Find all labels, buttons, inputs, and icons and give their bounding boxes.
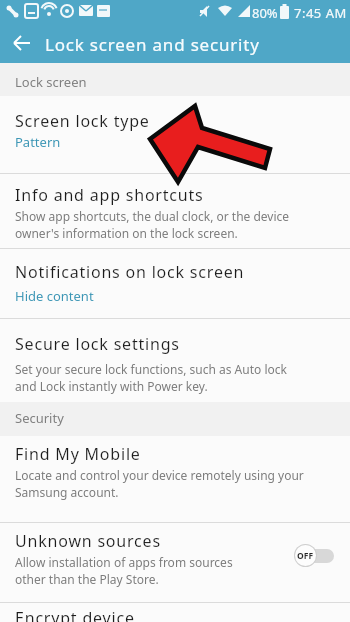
staticText: Hide content [15, 287, 94, 305]
staticText: owner's information on the lock screen. [15, 225, 238, 241]
staticText: Locate and control your device remotely … [15, 467, 304, 483]
button[interactable] [6, 28, 38, 58]
staticText: Notifications on lock screen [15, 261, 245, 283]
staticText: Unknown sources [15, 530, 161, 552]
staticText: Lock screen and security [45, 33, 260, 56]
staticText: Encrypt device [15, 607, 135, 622]
staticText: Lock screen [15, 73, 87, 91]
staticText: Set your secure lock functions, such as … [15, 361, 287, 377]
staticText: Show app shortcuts, the dual clock, or t… [15, 208, 290, 224]
staticText: 7:45 AM [294, 4, 347, 22]
button[interactable]: OFF [294, 544, 334, 567]
staticText: Screen lock type [15, 110, 150, 132]
staticText: OFF [297, 550, 314, 562]
staticText: 80% [252, 4, 278, 22]
staticText: and Lock instantly with Power key. [15, 378, 208, 394]
staticText: Pattern [15, 133, 61, 151]
button[interactable]: Unknown sources [0, 523, 350, 602]
staticText: Samsung account. [15, 484, 119, 500]
staticText: Secure lock settings [15, 333, 180, 355]
button[interactable]: Info and app shortcuts [0, 174, 350, 248]
button[interactable]: Screen lock type [0, 96, 350, 173]
button[interactable]: Encrypt device [0, 603, 350, 622]
staticText: Security [15, 409, 64, 427]
staticText: Info and app shortcuts [15, 184, 204, 206]
button[interactable]: Find My Mobile [0, 436, 350, 522]
staticText: Allow installation of apps from sources [15, 554, 233, 570]
button[interactable]: Secure lock settings [0, 319, 350, 402]
button[interactable]: Notifications on lock screen [0, 249, 350, 318]
staticText: other than the Play Store. [15, 571, 159, 587]
staticText: Find My Mobile [15, 443, 141, 465]
